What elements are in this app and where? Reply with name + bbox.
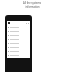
button[interactable] [7,29,30,33]
staticText: All the systems [23,1,41,4]
button[interactable] [7,41,30,45]
button[interactable] [7,37,30,41]
button[interactable] [7,53,30,57]
button[interactable] [7,25,30,29]
button[interactable] [7,33,30,37]
staticText: information [25,5,40,8]
button[interactable] [7,49,30,53]
button[interactable] [7,45,30,49]
